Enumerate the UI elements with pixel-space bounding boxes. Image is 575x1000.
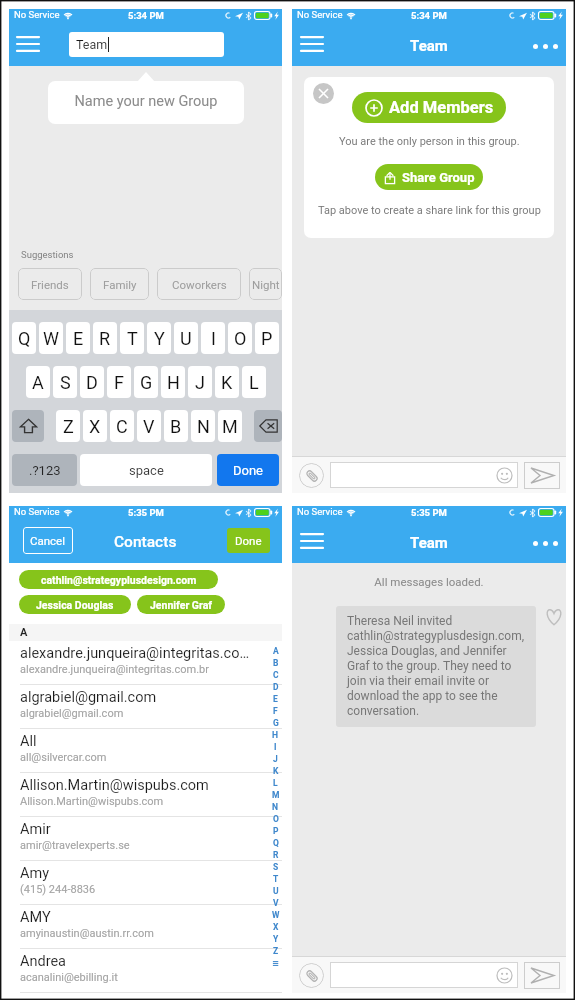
button[interactable]: alexandre.junqueira@integritas.co…	[9, 641, 282, 685]
button[interactable]: Amir	[9, 817, 282, 861]
button[interactable]: H	[161, 366, 185, 398]
staticText: You are the only person in this group.	[339, 135, 520, 148]
staticText: Done	[235, 534, 262, 547]
button[interactable]: Cancel	[23, 527, 73, 554]
button[interactable]: K	[215, 366, 239, 398]
button[interactable]: W	[39, 322, 63, 354]
staticText: D	[86, 372, 98, 393]
button[interactable]: Close	[313, 83, 334, 104]
staticText: L	[249, 372, 259, 393]
staticText: Theresa Neil invited cathlin@strategyplu…	[347, 614, 525, 718]
button[interactable]: T	[120, 322, 144, 354]
staticText: Friends	[31, 278, 69, 291]
button[interactable]: C	[110, 410, 134, 442]
staticText: Y	[273, 934, 279, 944]
button[interactable]: P	[255, 322, 279, 354]
staticText: Add Members	[389, 98, 494, 117]
button[interactable]: Menu	[301, 533, 323, 549]
button[interactable]: Theresa Neil invited cathlin@strategyplu…	[336, 606, 536, 727]
staticText: No Service	[14, 9, 60, 20]
button[interactable]: Q	[12, 322, 36, 354]
staticText: D	[273, 682, 279, 692]
button[interactable]: R	[93, 322, 117, 354]
button[interactable]: V	[137, 410, 161, 442]
button[interactable]	[330, 962, 518, 988]
button[interactable]: Team	[69, 32, 224, 57]
button[interactable]: Share Group	[375, 164, 483, 190]
staticText: algrabiel@gmail.com	[20, 689, 274, 706]
staticText: .?123	[29, 463, 61, 478]
staticText: Tap above to create a share link for thi…	[318, 204, 541, 217]
button[interactable]: E	[66, 322, 90, 354]
button[interactable]: G	[134, 366, 158, 398]
button[interactable]: Y	[147, 322, 171, 354]
button[interactable]: D	[80, 366, 104, 398]
button[interactable]: More options	[525, 535, 566, 552]
button[interactable]: Friends	[18, 268, 82, 300]
button[interactable]: X	[83, 410, 107, 442]
staticText: M	[222, 416, 238, 437]
staticText: I	[211, 328, 216, 349]
button[interactable]: M	[218, 410, 242, 442]
button[interactable]	[330, 462, 518, 488]
button[interactable]: I	[201, 322, 225, 354]
button[interactable]: U	[174, 322, 198, 354]
staticText: G	[140, 372, 153, 393]
staticText: C	[116, 416, 128, 437]
button[interactable]: algrabiel@gmail.com	[9, 685, 282, 729]
button[interactable]: Night	[249, 268, 282, 300]
button[interactable]: Attach	[299, 463, 324, 488]
staticText: No Service	[14, 506, 60, 517]
staticText: V	[143, 416, 155, 437]
button[interactable]: AMY	[9, 905, 282, 949]
staticText: K	[273, 766, 279, 776]
button[interactable]: Jessica Douglas	[19, 595, 131, 614]
button[interactable]: Attach	[299, 963, 324, 988]
button[interactable]: Send	[524, 462, 560, 489]
staticText: T	[273, 874, 279, 884]
button[interactable]: J	[188, 366, 212, 398]
button[interactable]: All	[9, 729, 282, 773]
button[interactable]: Jennifer Graf	[137, 595, 225, 614]
button[interactable]: More options	[525, 38, 566, 55]
staticText: 5:35 PM	[128, 507, 164, 518]
staticText: (415) 244-8836	[20, 883, 274, 896]
staticText: No Service	[297, 9, 343, 20]
button[interactable]: .?123	[12, 454, 77, 486]
button[interactable]: F	[107, 366, 131, 398]
button[interactable]: Andrea	[9, 949, 282, 993]
staticText: B	[170, 416, 182, 437]
button[interactable]: S	[53, 366, 77, 398]
button[interactable]: Done	[217, 454, 279, 486]
button[interactable]: L	[242, 366, 266, 398]
button[interactable]: B	[164, 410, 188, 442]
button[interactable]: Like	[543, 606, 565, 628]
staticText: Z	[63, 416, 74, 437]
staticText: E	[73, 328, 84, 349]
button[interactable]: Add Members	[352, 92, 506, 123]
button[interactable]: O	[228, 322, 252, 354]
button[interactable]: N	[191, 410, 215, 442]
button[interactable]: Done	[227, 528, 270, 553]
staticText: No Service	[297, 506, 343, 517]
button[interactable]: Z	[56, 410, 80, 442]
button[interactable]: cathlin@strategyplusdesign.com	[19, 570, 218, 589]
staticText: P	[261, 328, 273, 349]
staticText: Jennifer Graf	[150, 599, 213, 611]
button[interactable]: Menu	[17, 36, 39, 52]
button[interactable]: Send	[524, 962, 560, 989]
button[interactable]: Shift	[12, 410, 44, 442]
button[interactable]: Allison.Martin@wispubs.com	[9, 773, 282, 817]
staticText: F	[273, 706, 278, 716]
button[interactable]: Coworkers	[157, 268, 241, 300]
staticText: Y	[154, 328, 165, 349]
staticText: all@silvercar.com	[20, 751, 274, 764]
button[interactable]: A	[26, 366, 50, 398]
staticText: Contacts	[114, 533, 177, 551]
button[interactable]: Amy	[9, 861, 282, 905]
button[interactable]: Family	[90, 268, 149, 300]
staticText: U	[273, 886, 279, 896]
button[interactable]: Menu	[301, 36, 323, 52]
button[interactable]: space	[80, 454, 212, 486]
button[interactable]: Backspace	[254, 410, 282, 442]
